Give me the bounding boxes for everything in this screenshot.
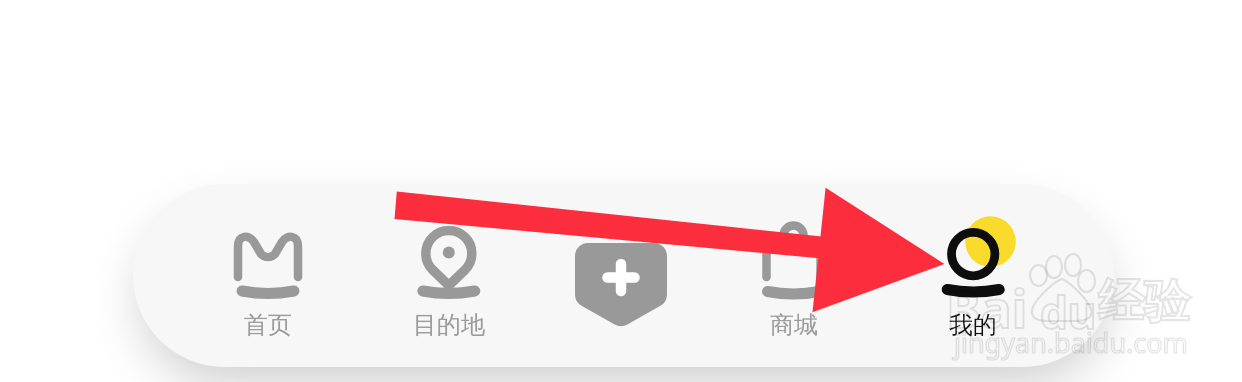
button[interactable]: 我的: [913, 310, 1033, 346]
button[interactable]: 首页: [208, 310, 328, 346]
staticText: 我的: [949, 310, 997, 340]
staticText: du: [1040, 282, 1097, 342]
staticText: Bai: [946, 272, 1028, 343]
staticText: 商城: [770, 310, 818, 340]
staticText: 经验: [1098, 273, 1190, 331]
button[interactable]: 商城: [734, 310, 854, 346]
staticText: 首页: [244, 310, 292, 340]
staticText: jingyan.baidu.com: [954, 324, 1188, 361]
button[interactable]: 发布: [575, 243, 667, 328]
button[interactable]: 目的地: [389, 310, 509, 346]
staticText: 目的地: [413, 310, 485, 340]
